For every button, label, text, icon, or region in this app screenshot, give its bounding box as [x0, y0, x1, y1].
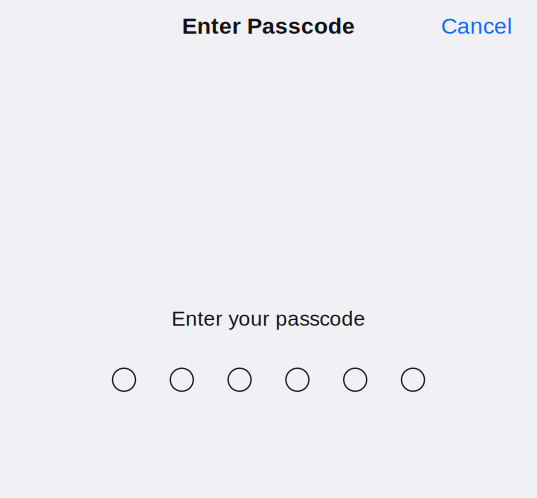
staticText: Cancel	[441, 13, 512, 39]
staticText: Enter Passcode	[182, 13, 355, 39]
button[interactable]: Cancel	[441, 5, 537, 47]
staticText: Enter your passcode	[171, 307, 365, 330]
